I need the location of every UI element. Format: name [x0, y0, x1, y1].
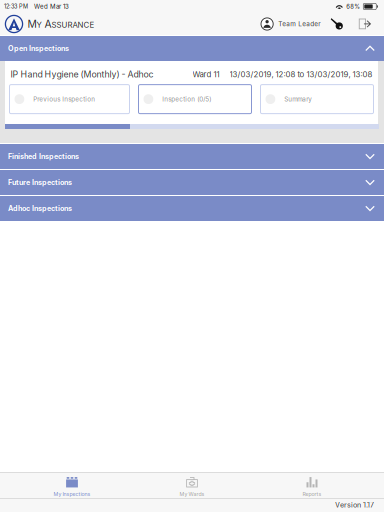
staticText: My Wards	[179, 491, 204, 497]
button[interactable]: My Wards	[132, 472, 252, 498]
staticText: Adhoc Inspections	[8, 204, 72, 213]
button[interactable]: Inspection (0/5)	[138, 85, 251, 114]
staticText: 13/03/2019, 12:08 to 13/03/2019, 13:08	[229, 70, 372, 79]
staticText: Open Inspections	[8, 44, 69, 53]
button[interactable]: Finished Inspections	[0, 144, 384, 169]
staticText: IP Hand Hygiene (Monthly) - Adhoc	[10, 69, 153, 80]
button[interactable]: Future Inspections	[0, 170, 384, 195]
staticText: M	[27, 18, 36, 30]
staticText: My Inspections	[53, 491, 90, 497]
button[interactable]: My Inspections	[12, 472, 132, 498]
staticText: 12:33 PM	[4, 3, 28, 10]
staticText: Reports	[302, 491, 321, 497]
button[interactable]: Previous Inspection	[9, 85, 129, 114]
button[interactable]: Open Inspections	[0, 36, 384, 61]
staticText: Wed Mar 13	[34, 3, 69, 10]
staticText: Future Inspections	[8, 178, 72, 187]
staticText: Inspection (0/5)	[162, 95, 211, 103]
staticText: Summary	[284, 95, 312, 103]
button[interactable]: Adhoc Inspections	[0, 196, 384, 221]
staticText: Y	[36, 20, 41, 30]
staticText: SSURANCE	[51, 20, 94, 30]
button[interactable]: Summary	[260, 85, 373, 114]
button[interactable]: Team Leader	[261, 15, 327, 33]
staticText: Version 1.17	[335, 501, 374, 509]
staticText: Previous Inspection	[33, 95, 95, 103]
button[interactable]: Sign out	[355, 15, 375, 33]
staticText: Team Leader	[278, 20, 320, 28]
button[interactable]: Permissions	[327, 15, 347, 33]
staticText: A	[41, 18, 51, 30]
button[interactable]: Reports	[252, 472, 372, 498]
staticText: Ward 11	[192, 70, 219, 79]
staticText: 68%	[346, 3, 360, 10]
staticText: Finished Inspections	[8, 152, 79, 161]
